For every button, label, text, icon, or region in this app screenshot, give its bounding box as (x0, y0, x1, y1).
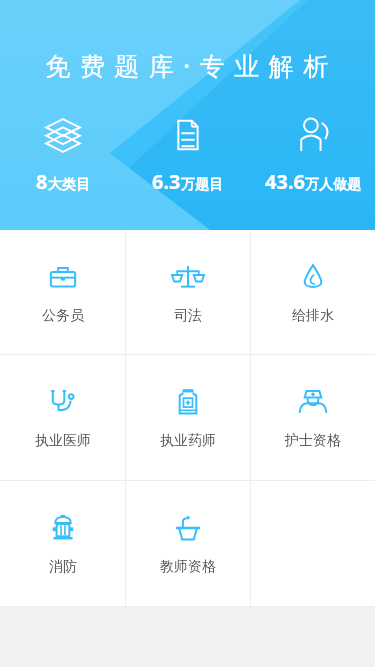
staticText: 万题目 (181, 176, 223, 194)
button[interactable]: 司法 (125, 230, 250, 354)
staticText: 免 费 题 库 · 专 业 解 析 (0, 48, 375, 82)
staticText: 6.3 (152, 168, 181, 195)
other: 司法 (171, 260, 205, 294)
button[interactable]: 执业药师 (125, 355, 250, 480)
staticText: 执业药师 (160, 432, 216, 450)
staticText: 43.6 (265, 168, 305, 195)
other: 教师资格 (171, 511, 205, 545)
button[interactable]: 给排水 (250, 230, 375, 354)
staticText: 教师资格 (160, 558, 216, 576)
other: 执业医师 (46, 385, 80, 419)
staticText: 护士资格 (285, 432, 341, 450)
staticText: 万人做题 (305, 176, 361, 194)
staticText: 8 (36, 168, 48, 195)
button[interactable]: 执业医师 (0, 355, 125, 480)
other: 消防 (46, 511, 80, 545)
other: 护士资格 (296, 385, 330, 419)
staticText: 执业医师 (35, 432, 91, 450)
other: 给排水 (296, 260, 330, 294)
staticText: 大类目 (48, 176, 90, 194)
button[interactable]: 护士资格 (250, 355, 375, 480)
staticText: 给排水 (292, 307, 334, 325)
other: 执业药师 (171, 385, 205, 419)
button[interactable]: 消防 (0, 481, 125, 606)
staticText: 公务员 (42, 307, 84, 325)
staticText: 司法 (174, 307, 202, 325)
staticText: 消防 (49, 558, 77, 576)
button[interactable]: 公务员 (0, 230, 125, 354)
other: 公务员 (46, 260, 80, 294)
button[interactable]: 教师资格 (125, 481, 250, 606)
